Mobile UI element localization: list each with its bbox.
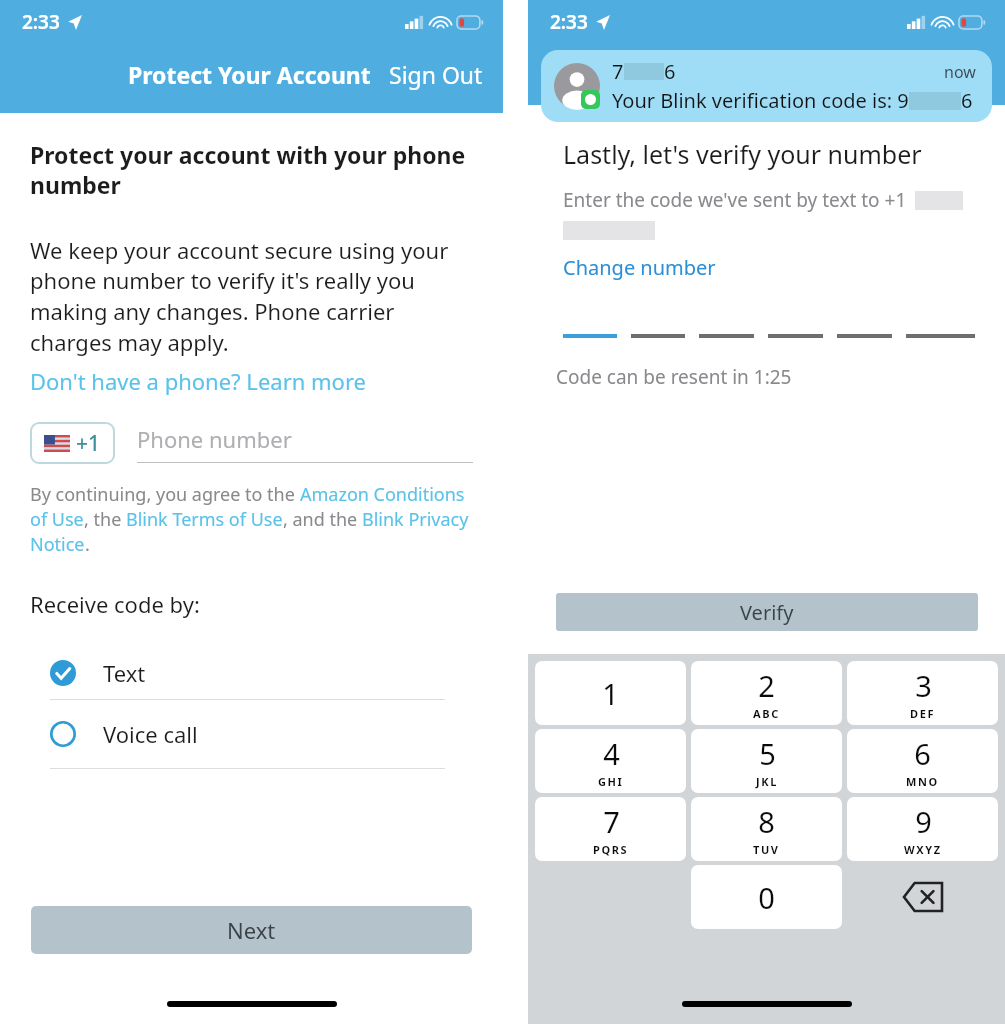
button[interactable]: +1	[30, 422, 115, 464]
staticText: PQRS	[593, 842, 629, 857]
button[interactable]: Don't have a phone? Learn more	[30, 366, 366, 396]
staticText: 5	[759, 734, 776, 773]
staticText: 6	[961, 87, 973, 114]
staticText: , the	[84, 507, 126, 532]
staticText: Sign Out	[389, 59, 483, 90]
staticText: TUV	[753, 842, 780, 857]
staticText: Change number	[563, 254, 716, 281]
staticText: By continuing, you agree to the	[30, 482, 300, 507]
staticText: Lastly, let's verify your number	[563, 137, 922, 171]
button[interactable]: 1	[535, 661, 686, 725]
button[interactable]: 4	[535, 729, 686, 793]
staticText: MNO	[906, 774, 939, 789]
staticText: Don't have a phone? Learn more	[30, 366, 366, 396]
button[interactable]: Notice	[30, 532, 85, 557]
staticText: 9	[915, 802, 932, 841]
button[interactable]: Next	[31, 906, 472, 954]
staticText: .	[85, 532, 90, 557]
staticText: Code can be resent in 1:25	[556, 364, 792, 390]
button[interactable]: Change number	[563, 254, 716, 281]
button[interactable]: Backspace	[847, 865, 998, 929]
button[interactable]: Amazon Conditions	[300, 482, 465, 507]
staticText: Voice call	[103, 719, 198, 749]
button[interactable]: 2	[691, 661, 842, 725]
staticText: GHI	[598, 774, 624, 789]
button[interactable]: 6	[847, 729, 998, 793]
button[interactable]: Blink Privacy	[362, 507, 469, 532]
staticText: 0	[758, 878, 775, 917]
staticText: 6	[914, 734, 931, 773]
button[interactable]: 8	[691, 797, 842, 861]
staticText: ABC	[753, 706, 780, 721]
staticText: Protect Your Account	[128, 59, 371, 90]
button[interactable]: 0	[691, 865, 842, 929]
button[interactable]: 7	[541, 50, 992, 122]
staticText: Your Blink verification code is: 9	[612, 87, 909, 114]
staticText: Text	[103, 658, 146, 688]
staticText: +1	[76, 429, 101, 458]
staticText: 3	[915, 666, 932, 705]
button[interactable]: 5	[691, 729, 842, 793]
button[interactable]: of Use	[30, 507, 84, 532]
staticText: Verify	[740, 599, 794, 626]
staticText: 4	[603, 734, 620, 773]
staticText: now	[944, 61, 976, 83]
button[interactable]: Blink Terms of Use	[126, 507, 283, 532]
staticText: Enter the code we've sent by text to +1	[563, 187, 907, 213]
button[interactable]: 9	[847, 797, 998, 861]
staticText: Next	[227, 915, 276, 945]
staticText: 2:33	[550, 9, 588, 35]
button[interactable]: Voice call	[50, 700, 445, 768]
button[interactable]: Sign Out	[389, 59, 483, 90]
staticText: Protect your account with your phone num…	[30, 139, 473, 200]
staticText: , and the	[283, 507, 362, 532]
staticText: 7	[603, 802, 620, 841]
staticText: 1	[602, 674, 619, 713]
staticText: DEF	[910, 706, 936, 721]
staticText: WXYZ	[904, 842, 942, 857]
button[interactable]: 7	[535, 797, 686, 861]
staticText: Phone number	[137, 424, 292, 454]
staticText: JKL	[756, 774, 778, 789]
staticText: 6	[664, 58, 676, 85]
staticText: 7	[612, 58, 624, 85]
staticText: 2	[758, 666, 775, 705]
staticText: 2:33	[22, 9, 60, 35]
staticText: 8	[758, 802, 775, 841]
staticText: We keep your account secure using your p…	[30, 235, 473, 358]
button[interactable]: 3	[847, 661, 998, 725]
button[interactable]: Text	[50, 647, 445, 699]
button[interactable]: Verify	[556, 593, 978, 631]
staticText: Receive code by:	[30, 589, 200, 619]
